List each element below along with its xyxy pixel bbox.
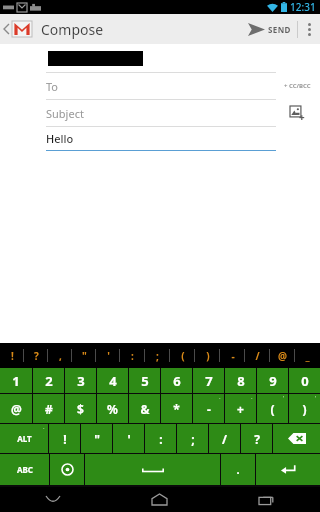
button[interactable]: : xyxy=(120,343,145,368)
staticText: / xyxy=(255,349,260,363)
staticText: Compose xyxy=(41,20,104,39)
button[interactable]: Attach image xyxy=(284,104,310,122)
button[interactable]: SEND xyxy=(242,14,297,44)
staticText: ! xyxy=(11,349,14,363)
button[interactable]: Subject xyxy=(0,100,274,126)
staticText: ( xyxy=(181,349,185,363)
button[interactable]: / xyxy=(245,343,270,368)
button[interactable]: & xyxy=(129,394,160,423)
button[interactable]: ) xyxy=(195,343,220,368)
button[interactable]: ? xyxy=(241,424,272,453)
button[interactable]: * xyxy=(161,394,192,423)
button[interactable]: . xyxy=(221,454,255,485)
button[interactable]: 1 xyxy=(0,368,32,393)
button[interactable]: - xyxy=(193,394,224,423)
staticText: ALT xyxy=(17,433,32,444)
button[interactable]: 8 xyxy=(225,368,256,393)
staticText: 3 xyxy=(77,372,85,390)
staticText: ; xyxy=(156,349,159,363)
button[interactable]: Hello xyxy=(0,127,320,149)
staticText: " xyxy=(82,349,87,363)
staticText: / xyxy=(222,431,227,447)
button[interactable]: ( xyxy=(170,343,195,368)
button[interactable]: ( xyxy=(257,394,288,423)
staticText: 0 xyxy=(301,372,309,390)
button[interactable]: Space xyxy=(85,454,220,485)
button[interactable]: " xyxy=(72,343,96,368)
button[interactable]: + xyxy=(225,394,256,423)
staticText: " xyxy=(94,431,100,447)
staticText: ) xyxy=(206,349,210,363)
button[interactable]: More options xyxy=(298,14,320,44)
button[interactable]: 5 xyxy=(129,368,160,393)
staticText: To xyxy=(46,79,59,94)
button[interactable]: 7 xyxy=(193,368,224,393)
staticText: SEND xyxy=(268,24,291,35)
button[interactable]: 2 xyxy=(33,368,64,393)
staticText: ' xyxy=(107,349,110,363)
staticText: @ xyxy=(11,401,22,417)
button[interactable]: ABC xyxy=(0,454,49,485)
button[interactable]: @ xyxy=(0,394,32,423)
staticText: 7 xyxy=(205,372,213,390)
staticText: _ xyxy=(305,349,310,363)
button[interactable]: 9 xyxy=(257,368,288,393)
button[interactable]: Back xyxy=(0,487,106,512)
button[interactable]: : xyxy=(145,424,176,453)
button[interactable]: 3 xyxy=(65,368,96,393)
button[interactable]: To xyxy=(0,73,274,99)
button[interactable]: % xyxy=(97,394,128,423)
button[interactable]: , xyxy=(48,343,72,368)
staticText: ' xyxy=(283,394,285,402)
staticText: ABC xyxy=(17,464,33,475)
staticText: & xyxy=(140,401,150,417)
staticText: ? xyxy=(254,431,260,447)
button[interactable]: ) xyxy=(289,394,320,423)
button[interactable]: Delete xyxy=(273,424,320,453)
button[interactable]: / xyxy=(209,424,240,453)
staticText: ) xyxy=(302,401,307,417)
button[interactable]: Settings xyxy=(50,454,84,485)
staticText: · xyxy=(251,394,253,402)
button[interactable]: 0 xyxy=(289,368,320,393)
button[interactable]: - xyxy=(220,343,245,368)
button[interactable]: $ xyxy=(65,394,96,423)
staticText: , xyxy=(59,349,62,363)
button[interactable]: " xyxy=(81,424,112,453)
staticText: 8 xyxy=(237,372,245,390)
button[interactable]: Enter xyxy=(256,454,320,485)
button[interactable]: ' xyxy=(96,343,120,368)
staticText: 12:31 xyxy=(290,0,316,14)
button[interactable]: ; xyxy=(177,424,208,453)
button[interactable]: 4 xyxy=(97,368,128,393)
button[interactable]: Navigate up xyxy=(0,14,34,44)
button[interactable]: ? xyxy=(24,343,48,368)
button[interactable]: # xyxy=(33,394,64,423)
staticText: 6 xyxy=(173,372,181,390)
staticText: : xyxy=(159,431,163,447)
staticText: + CC/BCC xyxy=(284,82,311,90)
button[interactable]: ! xyxy=(49,424,80,453)
button[interactable]: ; xyxy=(145,343,170,368)
button[interactable]: ! xyxy=(0,343,24,368)
staticText: @ xyxy=(278,349,287,363)
button[interactable]: _ xyxy=(295,343,320,368)
staticText: Hello xyxy=(46,131,74,146)
staticText: $ xyxy=(77,401,84,417)
staticText: · xyxy=(43,424,45,432)
button[interactable]: + CC/BCC xyxy=(281,82,314,90)
staticText: . xyxy=(236,462,240,477)
staticText: ' xyxy=(127,431,131,447)
button[interactable]: 6 xyxy=(161,368,192,393)
staticText: % xyxy=(107,401,118,417)
staticText: # xyxy=(45,401,53,417)
button[interactable]: ALT xyxy=(0,424,48,453)
button[interactable]: Home xyxy=(106,487,213,512)
staticText: - xyxy=(231,349,235,363)
button[interactable]: Recent apps xyxy=(213,487,320,512)
staticText: 2 xyxy=(45,372,53,390)
button[interactable]: ' xyxy=(113,424,144,453)
button[interactable]: @ xyxy=(270,343,295,368)
button[interactable] xyxy=(0,44,320,72)
staticText: ? xyxy=(34,349,39,363)
